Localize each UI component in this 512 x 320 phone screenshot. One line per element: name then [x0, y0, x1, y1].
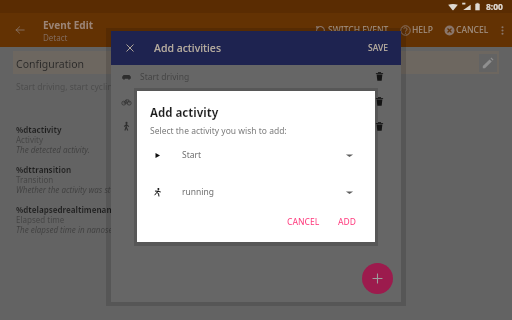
button[interactable]: SWITCH EVENT — [312, 24, 392, 36]
button[interactable]: More options — [492, 13, 512, 47]
button[interactable]: Add activity — [362, 263, 393, 294]
staticText: Detact — [43, 32, 68, 43]
button[interactable]: Delete — [367, 64, 392, 89]
button[interactable]: Back — [0, 13, 39, 47]
staticText: ADD — [338, 216, 356, 228]
button[interactable]: Start driving — [111, 64, 401, 89]
staticText: Start — [182, 149, 202, 161]
staticText: Start driving — [140, 71, 190, 83]
staticText: running — [182, 186, 214, 198]
button[interactable]: running — [153, 184, 354, 200]
button[interactable]: HELP — [397, 24, 436, 36]
staticText: SAVE — [368, 42, 388, 54]
button[interactable]: Edit — [479, 54, 497, 72]
staticText: SWITCH EVENT — [328, 24, 389, 36]
button[interactable]: Delete — [367, 114, 392, 139]
button[interactable]: CANCEL — [441, 24, 492, 36]
button[interactable]: SAVE — [355, 34, 401, 62]
staticText: Add activities — [154, 41, 222, 55]
staticText: Add activity — [150, 105, 219, 121]
button[interactable]: Delete — [111, 114, 401, 139]
staticText: The detected activity. — [16, 144, 90, 155]
button[interactable]: Close — [113, 31, 147, 65]
staticText: 8:00 — [486, 1, 503, 13]
button[interactable]: ADD — [331, 211, 363, 233]
staticText: Select the activity you wish to add: — [150, 125, 287, 137]
staticText: Start driving, start cycling, stop walki… — [16, 81, 173, 93]
staticText: Whether the activity was started or stop… — [16, 184, 172, 195]
staticText: Configuration — [16, 57, 85, 71]
staticText: CANCEL — [287, 216, 320, 228]
staticText: Elapsed time — [16, 214, 65, 225]
staticText: %dtactivity — [16, 124, 62, 135]
staticText: CANCEL — [456, 24, 489, 36]
staticText: Activity — [16, 134, 43, 145]
staticText: %dttransition — [16, 164, 72, 175]
staticText: HELP — [412, 24, 433, 36]
staticText: Event Edit — [43, 18, 93, 32]
staticText: The elapsed time in nanoseconds. — [16, 224, 136, 235]
button[interactable]: Start — [153, 147, 354, 163]
staticText: Transition — [16, 174, 54, 185]
button[interactable]: Configuration — [13, 51, 499, 74]
staticText: %dtelapsedrealtimenanos — [16, 204, 121, 215]
button[interactable]: Delete — [111, 89, 401, 114]
button[interactable]: Delete — [367, 89, 392, 114]
button[interactable]: CANCEL — [280, 211, 327, 233]
